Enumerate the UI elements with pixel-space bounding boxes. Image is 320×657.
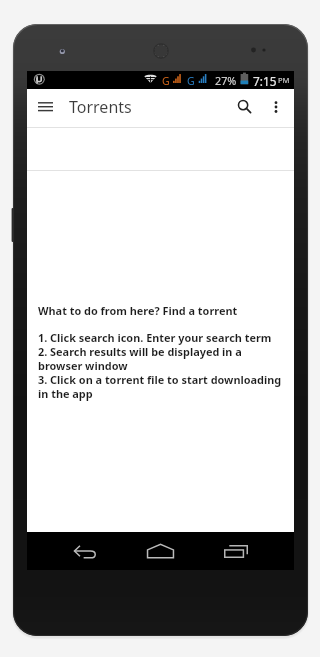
staticText: PM xyxy=(278,75,290,85)
button[interactable]: More options xyxy=(265,97,287,119)
staticText: G xyxy=(187,74,195,88)
button[interactable]: Recent apps xyxy=(217,534,254,568)
staticText: Torrents xyxy=(69,96,132,118)
staticText: G xyxy=(162,74,170,88)
staticText: 7:15 xyxy=(253,73,277,89)
button[interactable]: Back xyxy=(67,534,104,568)
button[interactable]: Open navigation drawer xyxy=(33,96,57,120)
staticText: What to do from here? Find a torrent xyxy=(38,303,238,318)
button[interactable]: Home xyxy=(142,534,179,568)
staticText: 27% xyxy=(215,73,237,88)
button[interactable]: Search xyxy=(230,93,260,123)
staticText: 1. Click search icon. Enter your search … xyxy=(38,330,284,401)
